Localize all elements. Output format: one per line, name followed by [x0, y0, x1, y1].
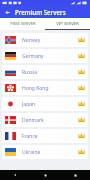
button[interactable]: Germany	[2, 49, 88, 63]
staticText: Germany	[22, 53, 44, 60]
button[interactable]: Home	[30, 170, 60, 180]
button[interactable]: VIP SERVER	[45, 18, 90, 30]
staticText: Japan	[22, 101, 36, 108]
button[interactable]: FREE SERVER	[0, 18, 45, 30]
button[interactable]: Back	[0, 170, 30, 180]
button[interactable]: Hong Kong	[2, 81, 88, 95]
staticText: Russia	[22, 69, 38, 76]
staticText: France	[22, 133, 38, 140]
button[interactable]: Denmark	[2, 113, 88, 127]
button[interactable]: Recent apps	[60, 170, 90, 180]
button[interactable]: Japan	[2, 97, 88, 111]
staticText: FREE SERVER	[10, 21, 36, 27]
staticText: Ukraine	[22, 149, 41, 156]
staticText: VIP SERVER	[56, 21, 79, 27]
button[interactable]: Back	[2, 7, 12, 17]
staticText: Hong Kong	[22, 85, 49, 92]
button[interactable]: Ukraine	[2, 145, 88, 159]
staticText: Denmark	[22, 117, 44, 124]
staticText: Premium Servers	[15, 8, 66, 16]
staticText: Norway	[22, 37, 41, 44]
button[interactable]: Norway	[2, 33, 88, 47]
button[interactable]: France	[2, 129, 88, 143]
button[interactable]: Russia	[2, 65, 88, 79]
